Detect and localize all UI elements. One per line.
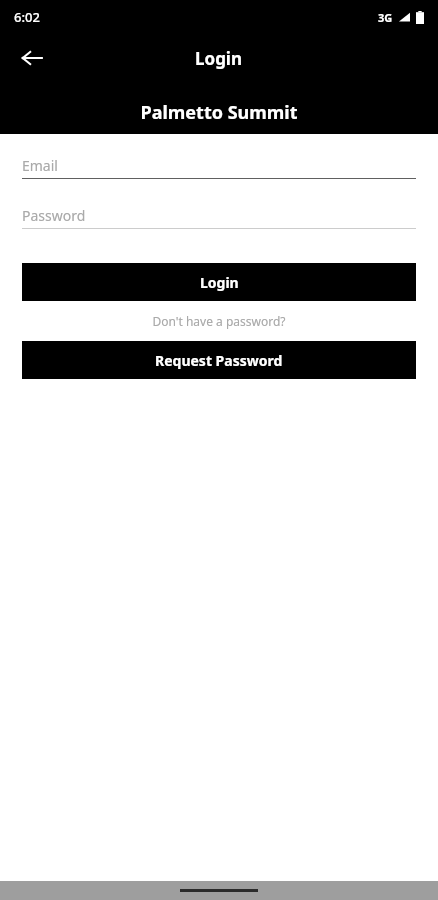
staticText: Password	[22, 206, 86, 225]
button[interactable]: Email	[22, 152, 416, 179]
button[interactable]: Password	[22, 202, 416, 229]
staticText: Login	[200, 273, 239, 292]
staticText: Login	[195, 47, 243, 70]
staticText: Palmetto Summit	[0, 100, 438, 125]
staticText: Request Password	[155, 351, 283, 370]
staticText: Email	[22, 156, 58, 175]
staticText: 6:02	[14, 8, 40, 26]
button[interactable]: Back	[12, 38, 52, 78]
staticText: Don't have a password?	[22, 313, 416, 329]
button[interactable]: Login	[22, 263, 416, 301]
button[interactable]: Request Password	[22, 341, 416, 379]
staticText: 3G	[378, 10, 393, 25]
